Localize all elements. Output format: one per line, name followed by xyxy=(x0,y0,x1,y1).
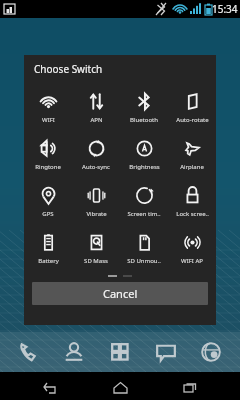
button[interactable]: WIFI xyxy=(24,83,72,130)
staticText: WIFI xyxy=(42,116,55,124)
staticText: 15:34 xyxy=(212,2,238,16)
button[interactable]: Browser xyxy=(194,335,228,369)
button[interactable]: SD Unmou.. xyxy=(120,224,168,271)
button[interactable]: Vibrate xyxy=(72,177,120,224)
button[interactable]: Auto-rotate xyxy=(168,83,216,130)
staticText: SD Unmou.. xyxy=(127,257,161,265)
button[interactable]: Brightness xyxy=(120,130,168,177)
button[interactable]: Home xyxy=(100,372,140,400)
button[interactable]: Bluetooth xyxy=(120,83,168,130)
staticText: Screen tim.. xyxy=(127,210,161,218)
button[interactable]: Back xyxy=(30,372,70,400)
button[interactable]: Phone xyxy=(12,335,46,369)
button[interactable]: Ringtone xyxy=(24,130,72,177)
staticText: GPS xyxy=(42,210,54,218)
staticText: Auto-rotate xyxy=(176,116,209,124)
button[interactable]: Battery xyxy=(24,224,72,271)
button[interactable]: APN xyxy=(72,83,120,130)
button[interactable]: Cancel xyxy=(32,282,208,305)
staticText: Cancel xyxy=(103,286,138,301)
staticText: Airplane xyxy=(180,163,204,171)
button[interactable]: GPS xyxy=(24,177,72,224)
staticText: WIFI AP xyxy=(181,257,203,265)
staticText: Brightness xyxy=(129,163,160,171)
button[interactable]: Lock scree.. xyxy=(168,177,216,224)
staticText: APN xyxy=(90,116,103,124)
button[interactable]: Airplane xyxy=(168,130,216,177)
button[interactable]: Messaging xyxy=(149,335,183,369)
staticText: Ringtone xyxy=(35,163,61,171)
staticText: Bluetooth xyxy=(130,116,158,124)
button[interactable]: Apps xyxy=(103,335,137,369)
button[interactable]: SD Mass xyxy=(72,224,120,271)
staticText: Battery xyxy=(38,257,59,265)
button[interactable]: Screen tim.. xyxy=(120,177,168,224)
staticText: Choose Switch xyxy=(34,62,103,76)
button[interactable]: Auto-sync xyxy=(72,130,120,177)
staticText: Auto-sync xyxy=(82,163,110,171)
button[interactable]: Contacts xyxy=(57,335,91,369)
button[interactable]: WIFI AP xyxy=(168,224,216,271)
staticText: Vibrate xyxy=(86,210,107,218)
button[interactable]: Recents xyxy=(170,372,210,400)
staticText: SD Mass xyxy=(84,257,108,265)
staticText: Lock scree.. xyxy=(176,210,209,218)
